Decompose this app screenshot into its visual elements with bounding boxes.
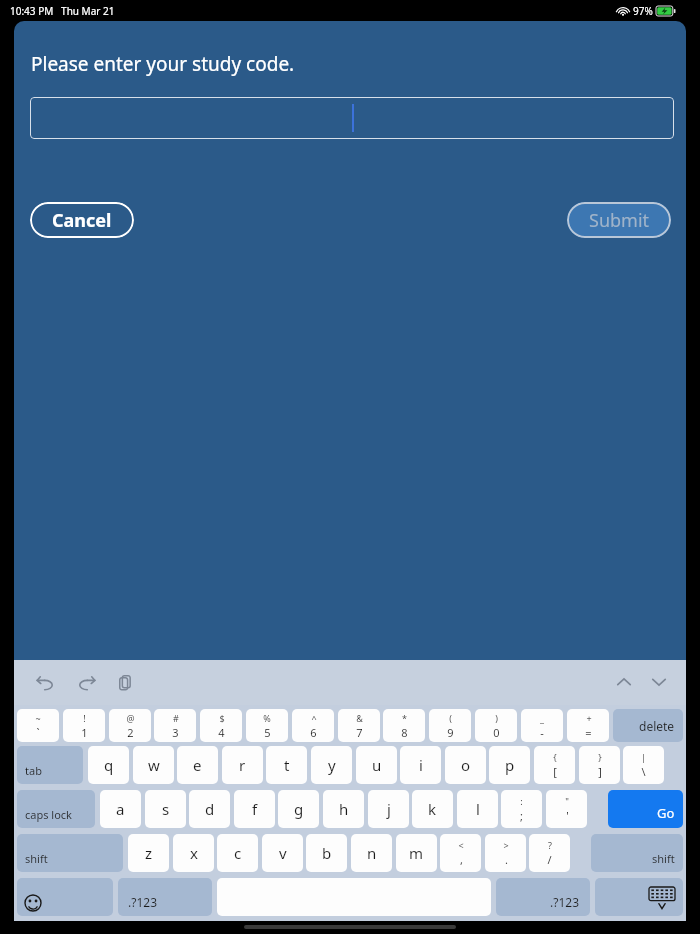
button[interactable]: v: [262, 834, 303, 872]
button[interactable]: {: [534, 746, 575, 784]
button[interactable]: Previous field: [611, 670, 637, 696]
button[interactable]: <: [440, 834, 481, 872]
button[interactable]: caps lock: [17, 790, 95, 828]
button[interactable]: n: [351, 834, 392, 872]
button[interactable]: (: [429, 709, 471, 742]
button[interactable]: shift: [17, 834, 123, 872]
staticText: 97%: [633, 4, 653, 18]
button[interactable]: |: [623, 746, 664, 784]
button[interactable]: ~: [17, 709, 59, 742]
button[interactable]: w: [133, 746, 174, 784]
staticText: <: [458, 839, 464, 851]
button[interactable]: Hide keyboard: [595, 878, 683, 916]
button[interactable]: g: [278, 790, 319, 828]
button[interactable]: :: [501, 790, 542, 828]
button[interactable]: .?123: [496, 878, 590, 916]
button[interactable]: o: [445, 746, 486, 784]
staticText: ): [495, 712, 498, 724]
button[interactable]: $: [200, 709, 242, 742]
button[interactable]: i: [400, 746, 441, 784]
staticText: o: [461, 755, 471, 775]
staticText: $: [219, 712, 225, 724]
button[interactable]: q: [88, 746, 129, 784]
button[interactable]: x: [173, 834, 214, 872]
button[interactable]: #: [154, 709, 196, 742]
button[interactable]: .?123: [118, 878, 212, 916]
staticText: ]: [598, 764, 602, 779]
staticText: w: [148, 755, 160, 775]
button[interactable]: d: [189, 790, 230, 828]
staticText: (: [449, 712, 452, 724]
button[interactable]: m: [396, 834, 437, 872]
staticText: 10:43 PM Thu Mar 21: [10, 4, 115, 18]
staticText: *: [402, 712, 407, 724]
button[interactable]: t: [266, 746, 307, 784]
staticText: ~: [35, 712, 41, 724]
button[interactable]: !: [63, 709, 105, 742]
staticText: \: [641, 764, 646, 779]
button[interactable]: shift: [591, 834, 683, 872]
staticText: .?123: [550, 894, 580, 910]
staticText: m: [409, 843, 424, 863]
staticText: Submit: [589, 208, 650, 233]
button[interactable]: y: [311, 746, 352, 784]
staticText: >: [503, 839, 509, 851]
staticText: 9: [447, 725, 454, 740]
button[interactable]: tab: [17, 746, 83, 784]
button[interactable]: Cancel: [30, 202, 134, 238]
staticText: 8: [401, 725, 408, 740]
button[interactable]: }: [579, 746, 620, 784]
button[interactable]: +: [567, 709, 609, 742]
button[interactable]: ): [475, 709, 517, 742]
button[interactable]: Undo: [33, 670, 59, 696]
staticText: c: [234, 843, 242, 863]
button[interactable]: @: [109, 709, 151, 742]
button[interactable]: f: [234, 790, 275, 828]
staticText: t: [284, 755, 290, 775]
button[interactable]: Emoji: [17, 878, 113, 916]
button[interactable]: Submit: [567, 202, 671, 238]
button[interactable]: h: [323, 790, 364, 828]
staticText: tab: [25, 763, 42, 778]
button[interactable]: a: [100, 790, 141, 828]
button[interactable]: r: [222, 746, 263, 784]
staticText: ;: [520, 808, 523, 823]
button[interactable]: u: [356, 746, 397, 784]
button[interactable]: %: [246, 709, 288, 742]
staticText: :: [520, 795, 523, 807]
staticText: @: [126, 712, 135, 724]
button[interactable]: k: [412, 790, 453, 828]
button[interactable]: s: [145, 790, 186, 828]
button[interactable]: ?: [529, 834, 570, 872]
button[interactable]: j: [368, 790, 409, 828]
staticText: Please enter your study code.: [31, 51, 295, 77]
button[interactable]: Redo: [73, 670, 99, 696]
staticText: 3: [172, 725, 179, 740]
button[interactable]: z: [128, 834, 169, 872]
staticText: %: [263, 712, 271, 724]
button[interactable]: ^: [292, 709, 334, 742]
button[interactable]: delete: [613, 709, 683, 742]
button[interactable]: c: [217, 834, 258, 872]
button[interactable]: b: [306, 834, 347, 872]
button[interactable]: *: [383, 709, 425, 742]
staticText: ^: [311, 712, 317, 724]
staticText: caps lock: [25, 807, 72, 822]
button[interactable]: p: [489, 746, 530, 784]
button[interactable]: &: [338, 709, 380, 742]
staticText: 7: [356, 725, 363, 740]
button[interactable]: l: [457, 790, 498, 828]
button[interactable]: Paste: [113, 670, 139, 696]
staticText: shift: [652, 851, 675, 866]
button[interactable]: e: [177, 746, 218, 784]
button[interactable]: Next field: [646, 670, 672, 696]
button[interactable]: >: [485, 834, 526, 872]
button[interactable]: [30, 97, 674, 139]
button[interactable]: Go: [608, 790, 683, 828]
staticText: 2: [127, 725, 134, 740]
staticText: Cancel: [52, 208, 112, 233]
button[interactable]: _: [521, 709, 563, 742]
button[interactable]: ": [546, 790, 587, 828]
staticText: a: [116, 799, 125, 819]
